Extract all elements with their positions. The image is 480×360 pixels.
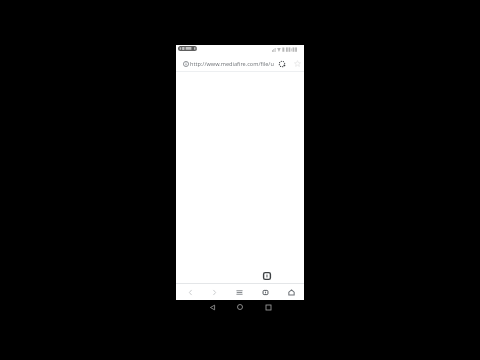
button[interactable]: Site information	[183, 61, 189, 67]
staticText: http://www.mediafire.com/file/u	[190, 60, 274, 68]
button[interactable]: Forward	[206, 284, 222, 300]
button[interactable]: Back	[182, 284, 198, 300]
button[interactable]: Home	[233, 300, 247, 314]
button[interactable]: Bookmark	[294, 60, 301, 67]
button[interactable]: Recents	[261, 300, 275, 314]
button[interactable]: Tabs	[257, 284, 273, 300]
button[interactable]: Tab switcher	[263, 272, 271, 280]
button[interactable]: Stop loading	[278, 60, 286, 68]
button[interactable]: Menu	[231, 284, 247, 300]
button[interactable]: Back	[205, 300, 219, 314]
button[interactable]: Site information	[176, 56, 304, 71]
button[interactable]: Home	[283, 284, 299, 300]
